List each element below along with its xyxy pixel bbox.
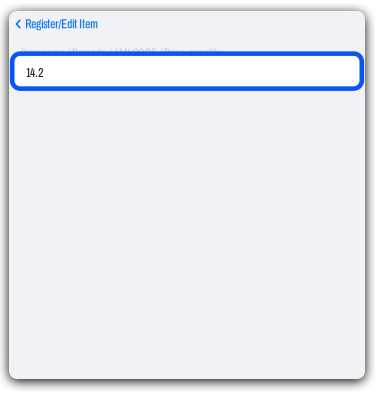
staticText: Register/Edit Item (25, 17, 98, 31)
staticText: Item name / Barcode / JAN CODE / Price q… (21, 46, 221, 60)
button[interactable]: Register/Edit Item (9, 13, 106, 35)
staticText: 14.2 (26, 66, 43, 80)
